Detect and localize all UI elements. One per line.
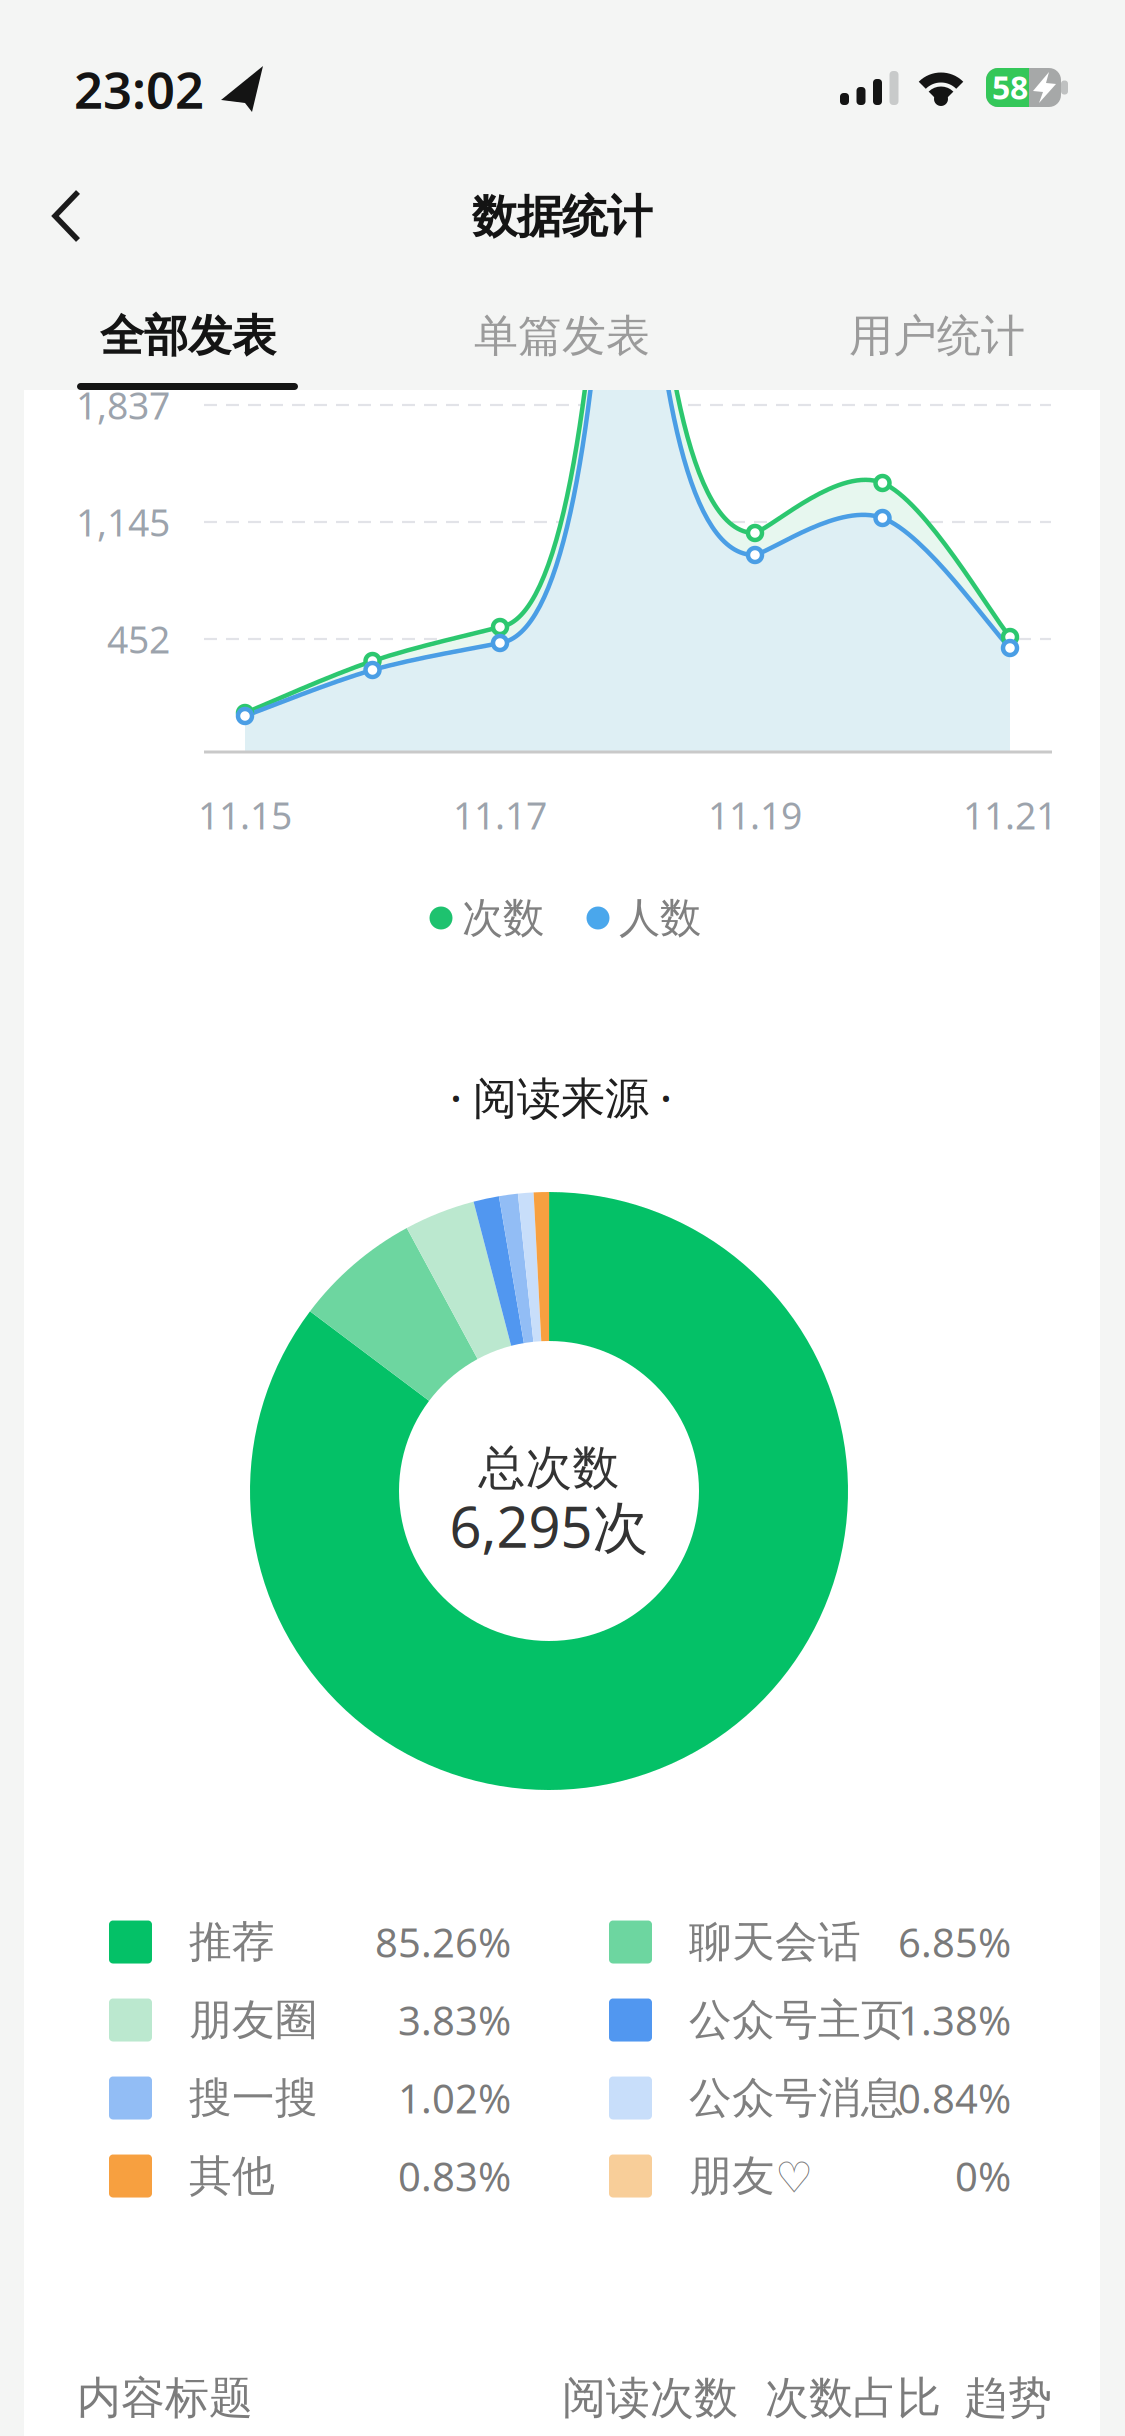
staticText: 0.84% (898, 2071, 1011, 2124)
staticText: 0% (955, 2149, 1011, 2202)
staticText: 11.17 (453, 790, 547, 840)
button[interactable]: 单篇发表 (412, 281, 712, 391)
staticText: 452 (107, 614, 170, 664)
staticText: 数据统计 (472, 189, 652, 245)
staticText: 85.26% (375, 1915, 511, 1968)
staticText: 1,837 (76, 380, 170, 430)
staticText: 23:02 (74, 55, 204, 123)
staticText: 总次数 (478, 1439, 619, 1497)
staticText: 次数 (462, 893, 544, 943)
button[interactable] (21, 171, 111, 261)
staticText: 6,295次 (449, 1489, 648, 1563)
staticText: 朋友♡ (689, 2150, 813, 2202)
button[interactable]: 趋势 (964, 2371, 1052, 2425)
staticText: 1.02% (398, 2071, 511, 2124)
staticText: 11.21 (963, 790, 1057, 840)
button[interactable]: 全部发表 (38, 281, 338, 391)
staticText: 阅读次数 (562, 2371, 738, 2425)
staticText: 人数 (619, 893, 701, 943)
staticText: 1,145 (76, 497, 170, 547)
staticText: 单篇发表 (474, 309, 650, 363)
staticText: 全部发表 (100, 309, 276, 363)
staticText: 推荐 (189, 1916, 275, 1968)
staticText: 6.85% (898, 1915, 1011, 1968)
staticText: 聊天会话 (689, 1916, 861, 1968)
button[interactable]: 次数占比 (765, 2371, 941, 2425)
staticText: 公众号主页 (689, 1994, 904, 2046)
staticText: · 阅读来源 · (450, 1068, 672, 1126)
staticText: 1.38% (898, 1993, 1011, 2046)
staticText: 11.15 (198, 790, 292, 840)
button[interactable]: 阅读次数 (562, 2371, 738, 2425)
staticText: 用户统计 (849, 309, 1025, 363)
staticText: 公众号消息 (689, 2072, 904, 2124)
staticText: 0.83% (398, 2149, 511, 2202)
staticText: 搜一搜 (189, 2072, 318, 2124)
staticText: 趋势 (964, 2371, 1052, 2425)
staticText: 11.19 (708, 790, 802, 840)
staticText: 其他 (189, 2150, 275, 2202)
staticText: 58 (992, 66, 1028, 108)
staticText: 内容标题 (77, 2371, 253, 2425)
staticText: 3.83% (398, 1993, 511, 2046)
staticText: 次数占比 (765, 2371, 941, 2425)
staticText: 朋友圈 (189, 1994, 318, 2046)
button[interactable]: 用户统计 (787, 281, 1087, 391)
